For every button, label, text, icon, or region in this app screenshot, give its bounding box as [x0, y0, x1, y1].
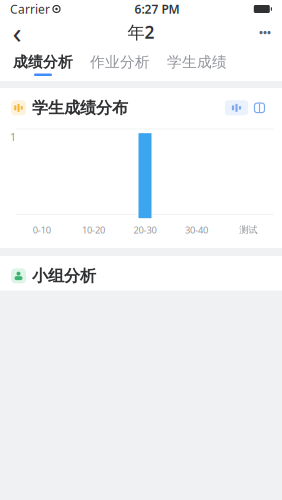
- staticText: 20-30: [133, 224, 156, 236]
- staticText: 1: [10, 130, 16, 144]
- button[interactable]: 学生成绩: [165, 53, 229, 76]
- staticText: 6:27 PM: [134, 1, 179, 17]
- staticText: ‹: [12, 12, 21, 51]
- button[interactable]: Back: [0, 18, 34, 46]
- staticText: 30-40: [185, 224, 208, 236]
- staticText: •••: [259, 25, 271, 39]
- staticText: 学生成绩: [167, 53, 227, 71]
- button[interactable]: Table view: [248, 100, 271, 115]
- button[interactable]: More options: [248, 18, 282, 46]
- staticText: 小组分析: [32, 266, 96, 286]
- staticText: Carrier: [10, 1, 50, 17]
- staticText: 0-10: [33, 224, 51, 236]
- staticText: 测试: [239, 224, 257, 236]
- button[interactable]: 作业分析: [88, 53, 152, 76]
- button[interactable]: 成绩分析: [11, 53, 75, 76]
- staticText: 年2: [127, 20, 154, 43]
- staticText: 成绩分析: [13, 53, 73, 71]
- staticText: 10-20: [82, 224, 105, 236]
- staticText: 学生成绩分布: [32, 98, 128, 118]
- staticText: 作业分析: [90, 53, 150, 71]
- button[interactable]: Chart view: [225, 100, 248, 115]
